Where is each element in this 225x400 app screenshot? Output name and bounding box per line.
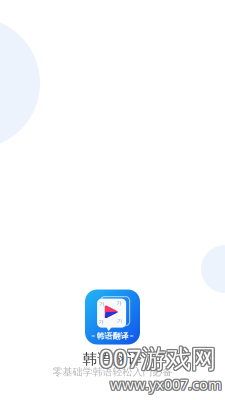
- staticText: www.yx007.com: [111, 374, 223, 394]
- staticText: www.yx007.com: [111, 373, 223, 393]
- staticText: 零基础学韩语轻松入门必备: [52, 366, 172, 378]
- staticText: www.yx007.com: [110, 374, 222, 394]
- staticText: 007游戏网: [100, 342, 217, 376]
- staticText: 007游戏网: [98, 340, 215, 374]
- staticText: 007游戏网: [98, 342, 215, 376]
- staticText: 가: [99, 301, 104, 307]
- staticText: www.yx007.com: [109, 374, 221, 394]
- staticText: 가: [98, 319, 103, 325]
- staticText: www.yx007.com: [110, 373, 222, 393]
- staticText: 007游戏网: [98, 341, 215, 375]
- staticText: 007游戏网: [99, 342, 216, 376]
- staticText: 007游戏网: [99, 341, 216, 375]
- staticText: www.yx007.com: [109, 373, 221, 393]
- staticText: 007游戏网: [99, 340, 216, 374]
- staticText: 韩语翻译: [96, 331, 128, 341]
- staticText: 가: [116, 300, 121, 306]
- staticText: www.yx007.com: [110, 375, 222, 395]
- staticText: 가: [117, 318, 122, 324]
- staticText: www.yx007.com: [111, 375, 223, 395]
- staticText: 007游戏网: [100, 340, 217, 374]
- staticText: 007游戏网: [100, 341, 217, 375]
- staticText: www.yx007.com: [109, 375, 221, 395]
- staticText: 韩语翻译: [82, 350, 142, 368]
- button[interactable]: 韩语翻译: [85, 289, 140, 344]
